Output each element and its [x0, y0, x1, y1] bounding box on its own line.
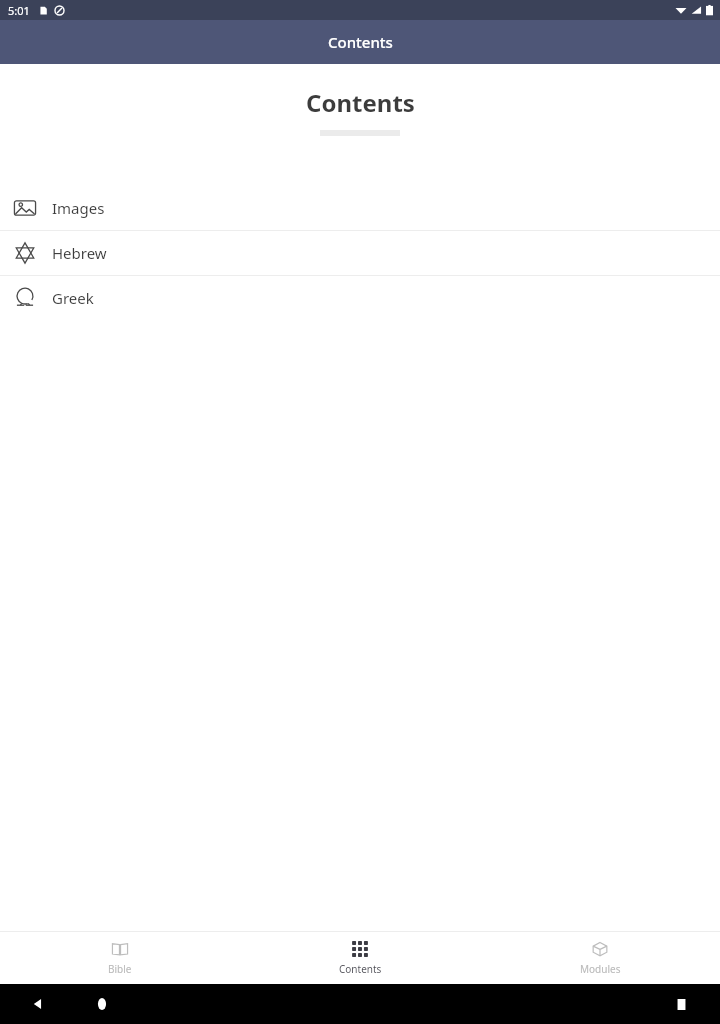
- staticText: Hebrew: [52, 243, 107, 263]
- button[interactable]: Contents: [240, 936, 480, 980]
- staticText: Contents: [339, 962, 382, 976]
- button[interactable]: Back: [24, 990, 52, 1018]
- button[interactable]: Bible: [0, 936, 240, 980]
- button[interactable]: Modules: [480, 936, 720, 980]
- button[interactable]: Greek: [0, 276, 720, 320]
- staticText: Bible: [108, 962, 132, 976]
- staticText: Contents: [306, 86, 415, 119]
- button[interactable]: Home: [88, 990, 116, 1018]
- staticText: 5:01: [8, 3, 30, 18]
- staticText: Images: [52, 198, 105, 218]
- staticText: Contents: [328, 32, 393, 52]
- staticText: Greek: [52, 288, 94, 308]
- button[interactable]: Images: [0, 186, 720, 230]
- staticText: Modules: [580, 962, 621, 976]
- button[interactable]: Recent apps: [667, 990, 695, 1018]
- button[interactable]: Hebrew: [0, 231, 720, 275]
